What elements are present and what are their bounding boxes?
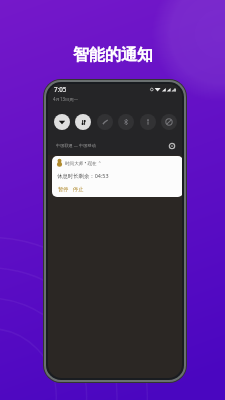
- button[interactable]: Do not disturb: [97, 114, 113, 130]
- staticText: 停止: [73, 186, 84, 193]
- staticText: 7:05: [54, 85, 67, 93]
- button[interactable]: Sound: [75, 114, 91, 130]
- button[interactable]: Auto rotate: [161, 114, 177, 130]
- button[interactable]: 时间大师 • 现在 ⌃: [52, 156, 182, 197]
- staticText: 中国联通 — 中国移动: [56, 143, 96, 149]
- staticText: 时间大师 • 现在 ⌃: [65, 160, 102, 166]
- staticText: 休息时长剩余：04:53: [57, 172, 109, 179]
- button[interactable]: 暂停: [57, 186, 70, 193]
- staticText: 智能的通知: [73, 45, 153, 65]
- button[interactable]: Flashlight: [140, 114, 156, 130]
- button[interactable]: Bluetooth: [118, 114, 134, 130]
- staticText: 4月13日周一: [53, 96, 79, 102]
- button[interactable]: Settings: [168, 142, 176, 150]
- button[interactable]: Wi-Fi: [54, 114, 70, 130]
- button[interactable]: 停止: [72, 186, 85, 193]
- staticText: 暂停: [58, 186, 69, 193]
